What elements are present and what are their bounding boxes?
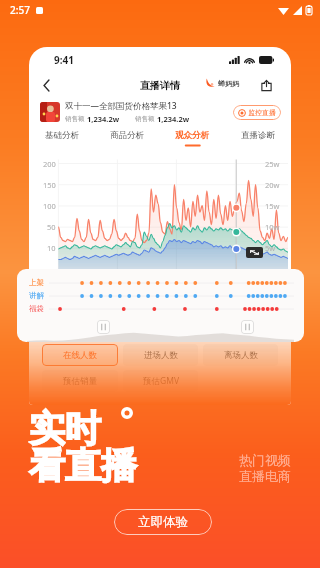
staticText: 直播电商 — [239, 468, 291, 484]
staticText: 100 — [43, 201, 56, 211]
button[interactable]: 预估GMV — [123, 370, 198, 392]
staticText: 预估销量 — [63, 376, 97, 387]
staticText: 5w — [265, 243, 276, 253]
staticText: 双十一—全部国货价格苹果13 — [65, 100, 177, 112]
button[interactable]: 在线人数 — [42, 344, 118, 366]
staticText: 上架 — [29, 278, 44, 287]
staticText: 150 — [43, 180, 56, 190]
staticText: 销售额 — [65, 115, 85, 123]
staticText: 1,234.2w — [87, 114, 120, 124]
button[interactable]: Range end — [241, 320, 254, 334]
staticText: 20w — [265, 180, 280, 190]
staticText: 离场人数 — [224, 350, 258, 361]
staticText: 200 — [43, 159, 56, 169]
staticText: 15w — [265, 201, 280, 211]
button[interactable]: Share — [257, 76, 275, 94]
button[interactable]: Fullscreen — [246, 247, 263, 258]
button[interactable]: 预估销量 — [42, 370, 118, 392]
button[interactable]: 商品分析 — [94, 127, 159, 143]
button[interactable]: 观众分析 — [159, 127, 225, 143]
staticText: 进场人数 — [144, 350, 178, 361]
staticText: 监控直播 — [248, 108, 276, 117]
button[interactable]: 立即体验 — [114, 509, 212, 535]
staticText: 销售额 — [135, 115, 155, 123]
button[interactable]: 离场人数 — [203, 344, 278, 366]
staticText: 观众分析 — [175, 130, 209, 141]
button[interactable]: 监控直播 — [233, 105, 281, 120]
button[interactable]: 基础分析 — [29, 127, 94, 143]
staticText: 25w — [265, 159, 280, 169]
staticText: 预估GMV — [143, 375, 179, 387]
staticText: 讲解 — [29, 291, 44, 300]
button[interactable]: 进场人数 — [123, 344, 198, 366]
staticText: 10 — [47, 243, 56, 253]
staticText: 10w — [265, 222, 280, 232]
staticText: 50 — [47, 222, 56, 232]
staticText: 直播详情 — [140, 79, 180, 92]
staticText: 立即体验 — [138, 514, 188, 530]
staticText: 基础分析 — [45, 130, 79, 141]
button[interactable]: Back — [37, 76, 55, 94]
staticText: 1,234.2w — [157, 114, 190, 124]
staticText: 看直播 — [29, 443, 137, 488]
staticText: 热门视频 — [239, 452, 291, 468]
staticText: 在线人数 — [63, 350, 97, 361]
staticText: 直播诊断 — [241, 130, 275, 141]
staticText: 福袋 — [29, 304, 44, 313]
button[interactable]: 直播诊断 — [225, 127, 291, 143]
staticText: 商品分析 — [110, 130, 144, 141]
staticText: 蝉妈妈 — [218, 79, 239, 88]
staticText: 2:57 — [10, 3, 30, 17]
staticText: 9:41 — [54, 53, 74, 67]
staticText: 实时 — [29, 406, 101, 451]
button[interactable]: Range start — [97, 320, 110, 334]
